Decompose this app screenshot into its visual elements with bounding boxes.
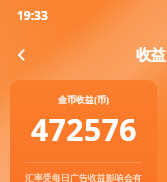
button[interactable]: Back <box>8 41 36 69</box>
button[interactable]: 金币收益(币) <box>10 80 157 182</box>
staticText: 汇率受每日广告收益影响会有浮动 <box>24 172 143 182</box>
staticText: 472576 <box>31 109 137 150</box>
staticText: 19:33 <box>17 7 48 23</box>
staticText: 收益 <box>136 46 166 65</box>
staticText: 金币收益(币) <box>58 93 110 105</box>
